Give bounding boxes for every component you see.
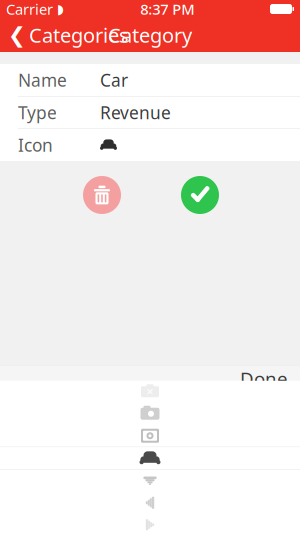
- staticText: Category: [108, 22, 192, 48]
- staticText: Carrier: [6, 0, 53, 19]
- button[interactable]: Icon: [0, 129, 300, 161]
- staticText: Categories: [29, 22, 129, 48]
- staticText: Done: [240, 366, 288, 391]
- button[interactable]: Name: [0, 64, 300, 96]
- button[interactable]: Done: [228, 365, 300, 391]
- staticText: Name: [18, 68, 67, 91]
- staticText: 8:37 PM: [140, 0, 194, 19]
- staticText: Car: [100, 68, 128, 91]
- button[interactable]: ❮: [0, 18, 137, 52]
- button[interactable]: Save: [178, 173, 222, 217]
- staticText: Type: [18, 101, 57, 124]
- staticText: ❮: [8, 23, 26, 47]
- button[interactable]: Delete: [80, 173, 124, 217]
- staticText: Icon: [18, 133, 53, 156]
- staticText: ◗: [53, 1, 64, 16]
- button[interactable]: Type: [0, 96, 300, 128]
- staticText: ✕: [146, 386, 154, 397]
- staticText: Revenue: [100, 101, 171, 124]
